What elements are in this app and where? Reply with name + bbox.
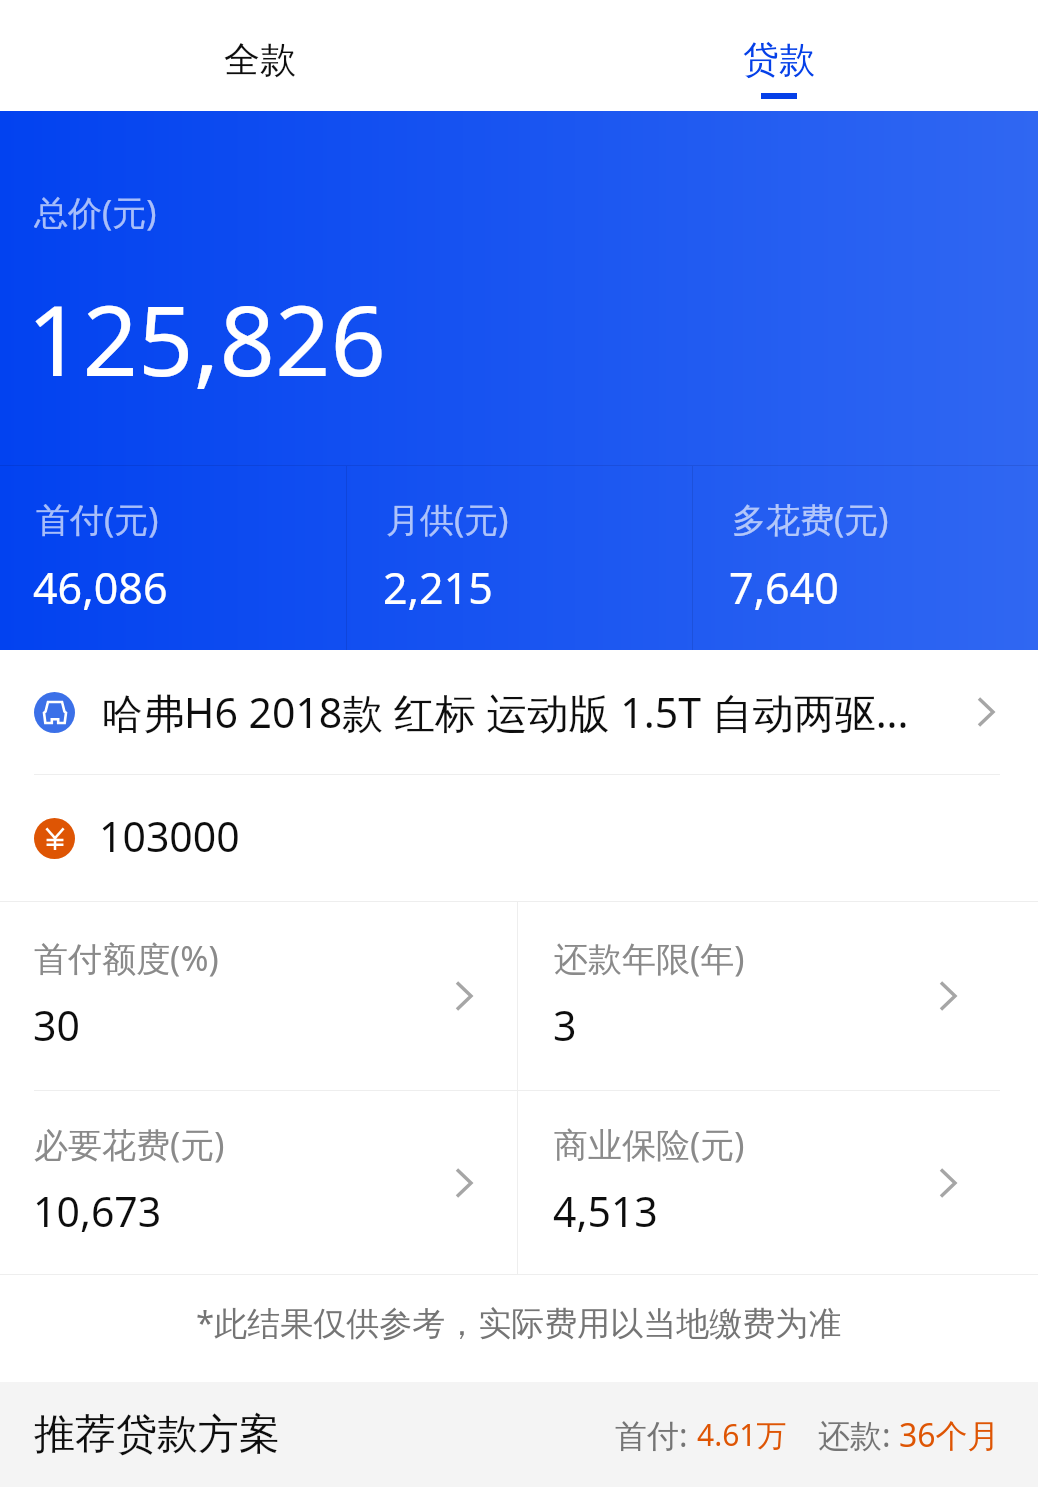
- staticText: 4,513: [553, 1183, 658, 1239]
- button[interactable]: 必要花费(元): [0, 1091, 517, 1274]
- button[interactable]: 首付额度(%): [0, 902, 517, 1090]
- other: 查看: [940, 1168, 956, 1198]
- staticText: 多花费(元): [732, 496, 889, 542]
- staticText: 首付(元): [36, 496, 159, 542]
- staticText: 3: [553, 997, 577, 1053]
- staticText: 还款年限(年): [554, 935, 745, 981]
- staticText: 哈弗H6 2018款 红标 运动版 1.5T 自动两驱...: [102, 684, 976, 740]
- staticText: *此结果仅供参考，实际费用以当地缴费为准: [196, 1300, 842, 1345]
- button[interactable]: 全款: [0, 0, 519, 111]
- staticText: 首付:: [615, 1413, 688, 1457]
- button[interactable]: 哈弗H6 2018款 红标 运动版 1.5T 自动两驱...: [0, 650, 1038, 774]
- button[interactable]: 推荐贷款方案: [0, 1382, 1038, 1487]
- button[interactable]: 贷款: [519, 0, 1038, 111]
- other: 查看: [456, 981, 472, 1011]
- other: 查看: [940, 981, 956, 1011]
- staticText: 36个月: [899, 1413, 1000, 1457]
- staticText: 月供(元): [386, 496, 509, 542]
- staticText: 10,673: [33, 1183, 162, 1239]
- other: 查看: [456, 1168, 472, 1198]
- button[interactable]: 103000: [0, 775, 1038, 901]
- staticText: 首付额度(%): [34, 935, 219, 981]
- staticText: 总价(元): [34, 189, 157, 235]
- staticText: 46,086: [33, 558, 168, 617]
- staticText: 7,640: [729, 558, 839, 617]
- staticText: 还款:: [818, 1413, 891, 1457]
- staticText: 商业保险(元): [554, 1121, 745, 1167]
- staticText: 30: [33, 997, 80, 1053]
- staticText: 推荐贷款方案: [34, 1409, 280, 1461]
- staticText: 贷款: [743, 37, 815, 82]
- staticText: 必要花费(元): [34, 1121, 225, 1167]
- button[interactable]: 还款年限(年): [518, 902, 1038, 1090]
- button[interactable]: 商业保险(元): [518, 1091, 1038, 1274]
- staticText: 103000: [99, 808, 240, 864]
- other: 查看: [978, 697, 994, 727]
- staticText: 全款: [224, 37, 296, 82]
- staticText: 2,215: [383, 558, 493, 617]
- staticText: 4.61万: [697, 1414, 787, 1455]
- staticText: 125,826: [27, 272, 386, 404]
